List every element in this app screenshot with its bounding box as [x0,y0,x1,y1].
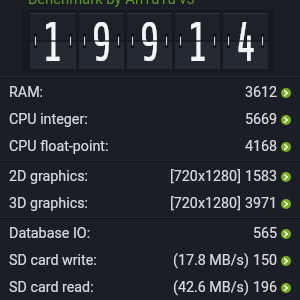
staticText: SD card write: [9,252,97,269]
button[interactable]: Show details [281,199,291,209]
staticText: Benchmark by AnTuTu v3 [28,0,195,7]
staticText: 3612 [245,84,278,101]
staticText: 3D graphics: [9,195,89,212]
staticText: 1583 [245,168,278,185]
staticText: (17.8 MB/s) [173,252,249,269]
staticText: 1 [43,13,63,69]
staticText: 565 [253,225,278,242]
staticText: RAM: [9,84,44,101]
button[interactable]: SD card read: [0,274,300,300]
staticText: CPU float-point: [9,138,109,155]
button[interactable]: Show details [281,283,291,293]
staticText: 150 [253,252,278,269]
staticText: SD card read: [9,279,94,296]
staticText: 2D graphics: [9,168,89,185]
staticText: 4168 [245,138,278,155]
button[interactable]: CPU integer: [0,106,300,133]
button[interactable]: 2D graphics: [0,163,300,190]
staticText: 5669 [245,111,278,128]
staticText: 4 [236,13,256,69]
staticText: 3971 [245,195,278,212]
button[interactable]: Show details [281,142,291,152]
staticText: [720x1280] [170,195,241,212]
staticText: [720x1280] [170,168,241,185]
button[interactable]: Database IO: [0,220,300,247]
staticText: 1 [188,13,208,69]
button[interactable]: Show details [281,172,291,182]
staticText: CPU integer: [9,111,88,128]
staticText: (42.6 MB/s) [173,279,249,296]
staticText: Database IO: [9,225,91,242]
staticText: 196 [253,279,278,296]
button[interactable]: Show details [281,229,291,239]
button[interactable]: 3D graphics: [0,190,300,217]
staticText: 9 [140,13,160,69]
button[interactable]: Show details [281,115,291,125]
button[interactable]: Show details [281,256,291,266]
button[interactable]: RAM: [0,79,300,106]
staticText: 9 [92,13,112,69]
button[interactable]: SD card write: [0,247,300,274]
button[interactable]: Show details [281,88,291,98]
button[interactable]: CPU float-point: [0,133,300,160]
